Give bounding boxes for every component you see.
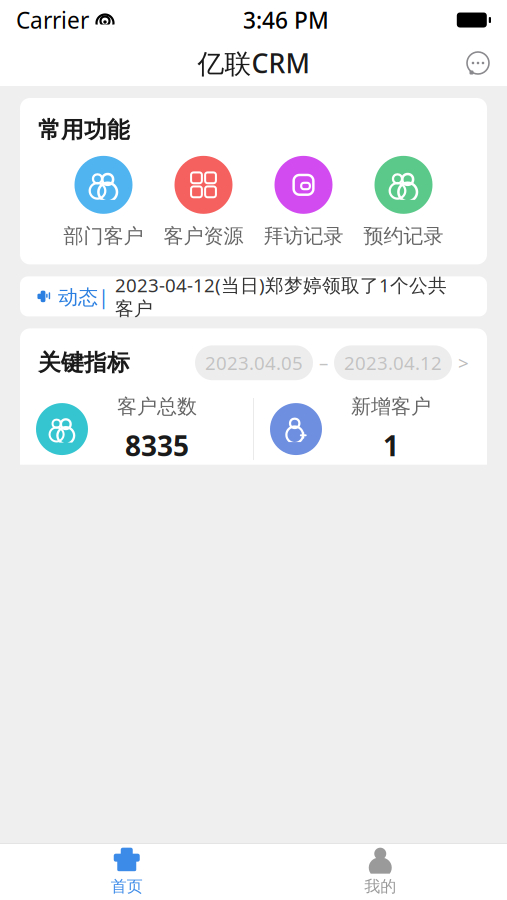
button[interactable]: 部门客户 bbox=[53, 156, 153, 248]
staticText: 1 bbox=[383, 427, 399, 464]
staticText: > bbox=[458, 350, 469, 375]
button[interactable]: 预约记录 bbox=[353, 156, 453, 248]
button[interactable]: 2023.04.05 bbox=[195, 345, 469, 380]
staticText: Carrier bbox=[16, 5, 89, 35]
staticText: 客户资源 bbox=[163, 224, 243, 248]
staticText: 部门客户 bbox=[63, 224, 143, 248]
staticText: 常用功能 bbox=[38, 116, 130, 144]
staticText: 动态| bbox=[58, 283, 109, 310]
button[interactable]: 新增客户 bbox=[254, 394, 487, 464]
button[interactable]: 拜访记录 bbox=[253, 156, 353, 248]
button[interactable]: 客户资源 bbox=[153, 156, 253, 248]
staticText: 首页 bbox=[111, 877, 143, 896]
button[interactable]: Messages bbox=[465, 50, 507, 76]
staticText: 拜访记录 bbox=[263, 224, 343, 248]
staticText: 关键指标 bbox=[38, 349, 130, 377]
staticText: 3:46 PM bbox=[243, 5, 329, 35]
staticText: 我的 bbox=[364, 877, 396, 896]
button[interactable]: 我的 bbox=[253, 842, 507, 900]
button[interactable]: 客户总数 bbox=[20, 394, 253, 464]
staticText: 2023.04.12 bbox=[344, 350, 442, 375]
button[interactable]: 动态| bbox=[20, 276, 487, 316]
staticText: 2023.04.05 bbox=[205, 350, 303, 375]
staticText: 预约记录 bbox=[363, 224, 443, 248]
staticText: – bbox=[319, 350, 328, 375]
staticText: 亿联CRM bbox=[197, 45, 309, 81]
button[interactable]: 首页 bbox=[0, 842, 253, 900]
staticText: 2023-04-12(当日)郑梦婷领取了1个公共客户 bbox=[115, 272, 447, 320]
staticText: 新增客户 bbox=[351, 394, 431, 419]
staticText: 客户总数 bbox=[117, 394, 197, 419]
staticText: 8335 bbox=[125, 427, 189, 464]
